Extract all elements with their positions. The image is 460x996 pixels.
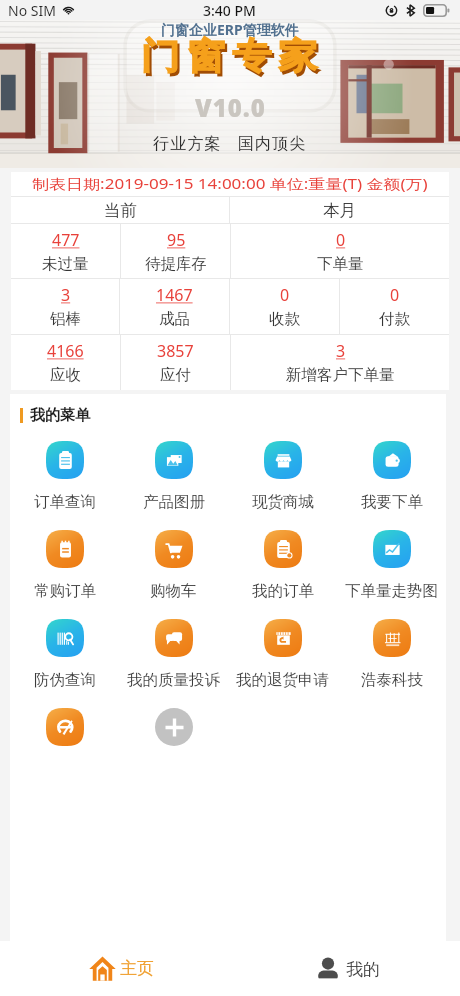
button[interactable]: [46, 708, 84, 780]
button[interactable]: 1467: [120, 279, 229, 334]
button[interactable]: 防伪查询: [34, 619, 96, 690]
button[interactable]: 下单量走势图: [345, 530, 438, 601]
button[interactable]: 浩泰科技: [361, 619, 423, 690]
button[interactable]: 0: [340, 279, 449, 334]
staticText: 4166: [47, 340, 84, 362]
button[interactable]: 3: [231, 335, 449, 390]
staticText: 门窗专家: [137, 34, 321, 78]
staticText: 现货商城: [252, 492, 314, 512]
staticText: 收款: [269, 309, 300, 329]
button[interactable]: 0: [231, 224, 449, 278]
button[interactable]: 4166: [11, 335, 120, 390]
staticText: 浩泰科技: [361, 670, 423, 690]
staticText: 我的订单: [252, 581, 314, 601]
staticText: 3: [336, 340, 346, 362]
staticText: 下单量走势图: [345, 581, 438, 601]
button[interactable]: 3: [11, 279, 119, 334]
staticText: 门窗企业ERP管理软件: [161, 20, 299, 39]
button[interactable]: 3857: [121, 335, 230, 390]
staticText: 当前: [104, 200, 137, 221]
staticText: 订单查询: [34, 492, 96, 512]
button[interactable]: 产品图册: [143, 441, 205, 512]
staticText: 我的退货申请: [236, 670, 329, 690]
staticText: 下单量: [317, 254, 364, 274]
staticText: 制表日期:2019-09-15 14:00:00 单位:重量(T) 金额(万): [32, 175, 429, 193]
staticText: 1467: [156, 284, 193, 306]
staticText: 门窗专家: [139, 37, 323, 81]
staticText: 我的质量投诉: [127, 670, 220, 690]
staticText: 主页: [120, 958, 154, 979]
staticText: 待提库存: [145, 254, 207, 274]
staticText: 防伪查询: [34, 670, 96, 690]
button[interactable]: 主页: [8, 941, 234, 996]
staticText: 购物车: [150, 581, 197, 601]
staticText: 付款: [379, 309, 410, 329]
button[interactable]: 95: [121, 224, 230, 278]
staticText: No SIM: [8, 1, 56, 20]
staticText: V10.0: [195, 91, 266, 124]
button[interactable]: 0: [230, 279, 339, 334]
staticText: 常购订单: [34, 581, 96, 601]
staticText: 应付: [160, 365, 191, 385]
staticText: 未过量: [42, 254, 89, 274]
button[interactable]: 我的: [234, 941, 460, 996]
staticText: 0: [390, 284, 400, 306]
staticText: 我要下单: [361, 492, 423, 512]
button[interactable]: 我的质量投诉: [127, 619, 220, 690]
staticText: 产品图册: [143, 492, 205, 512]
staticText: 新增客户下单量: [286, 365, 395, 385]
staticText: 成品: [159, 309, 190, 329]
staticText: 3857: [157, 340, 194, 362]
staticText: 0: [280, 284, 290, 306]
button[interactable]: 我的订单: [252, 530, 314, 601]
button[interactable]: 现货商城: [252, 441, 314, 512]
staticText: 行业方案 国内顶尖: [153, 132, 307, 154]
button[interactable]: 购物车: [150, 530, 197, 601]
staticText: 0: [336, 229, 346, 251]
staticText: 我的菜单: [30, 406, 90, 425]
button[interactable]: 我要下单: [361, 441, 423, 512]
button[interactable]: 我的退货申请: [236, 619, 329, 690]
staticText: 3:40 PM: [203, 1, 256, 20]
staticText: 铝棒: [50, 309, 81, 329]
button[interactable]: 477: [11, 224, 120, 278]
staticText: 3: [61, 284, 71, 306]
staticText: 477: [52, 229, 80, 251]
button[interactable]: 常购订单: [34, 530, 96, 601]
staticText: 应收: [50, 365, 81, 385]
staticText: 95: [167, 229, 186, 251]
button[interactable]: 订单查询: [34, 441, 96, 512]
button[interactable]: Add menu shortcut: [155, 708, 193, 746]
staticText: 我的: [346, 959, 380, 980]
staticText: 本月: [323, 200, 356, 221]
